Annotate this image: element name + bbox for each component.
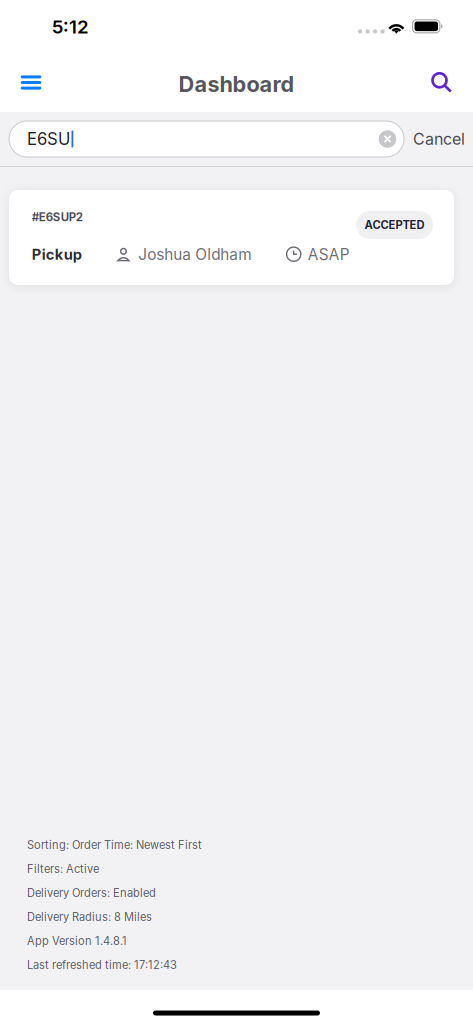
staticText: Delivery Radius: 8 Miles (27, 910, 152, 924)
staticText: App Version 1.4.8.1 (27, 934, 127, 948)
staticText: 5:12 (52, 15, 89, 38)
staticText: Joshua Oldham (138, 245, 251, 264)
staticText: Dashboard (178, 71, 294, 97)
button[interactable]: Cancel (404, 121, 473, 157)
button[interactable]: Menu (9, 62, 53, 106)
button[interactable]: #E6SUP2 (0, 190, 473, 285)
staticText: Cancel (413, 129, 465, 149)
staticText: ACCEPTED (364, 218, 424, 232)
button[interactable]: Search (420, 62, 464, 106)
staticText: Delivery Orders: Enabled (27, 886, 156, 900)
staticText: Sorting: Order Time: Newest First (27, 838, 202, 852)
button[interactable]: Clear text (374, 121, 401, 157)
staticText: E6SU (27, 129, 70, 149)
staticText: #E6SUP2 (32, 210, 83, 224)
staticText: Pickup (32, 246, 82, 263)
staticText: Filters: Active (27, 862, 99, 876)
staticText: ASAP (308, 245, 350, 264)
staticText: Last refreshed time: 17:12:43 (27, 958, 177, 972)
